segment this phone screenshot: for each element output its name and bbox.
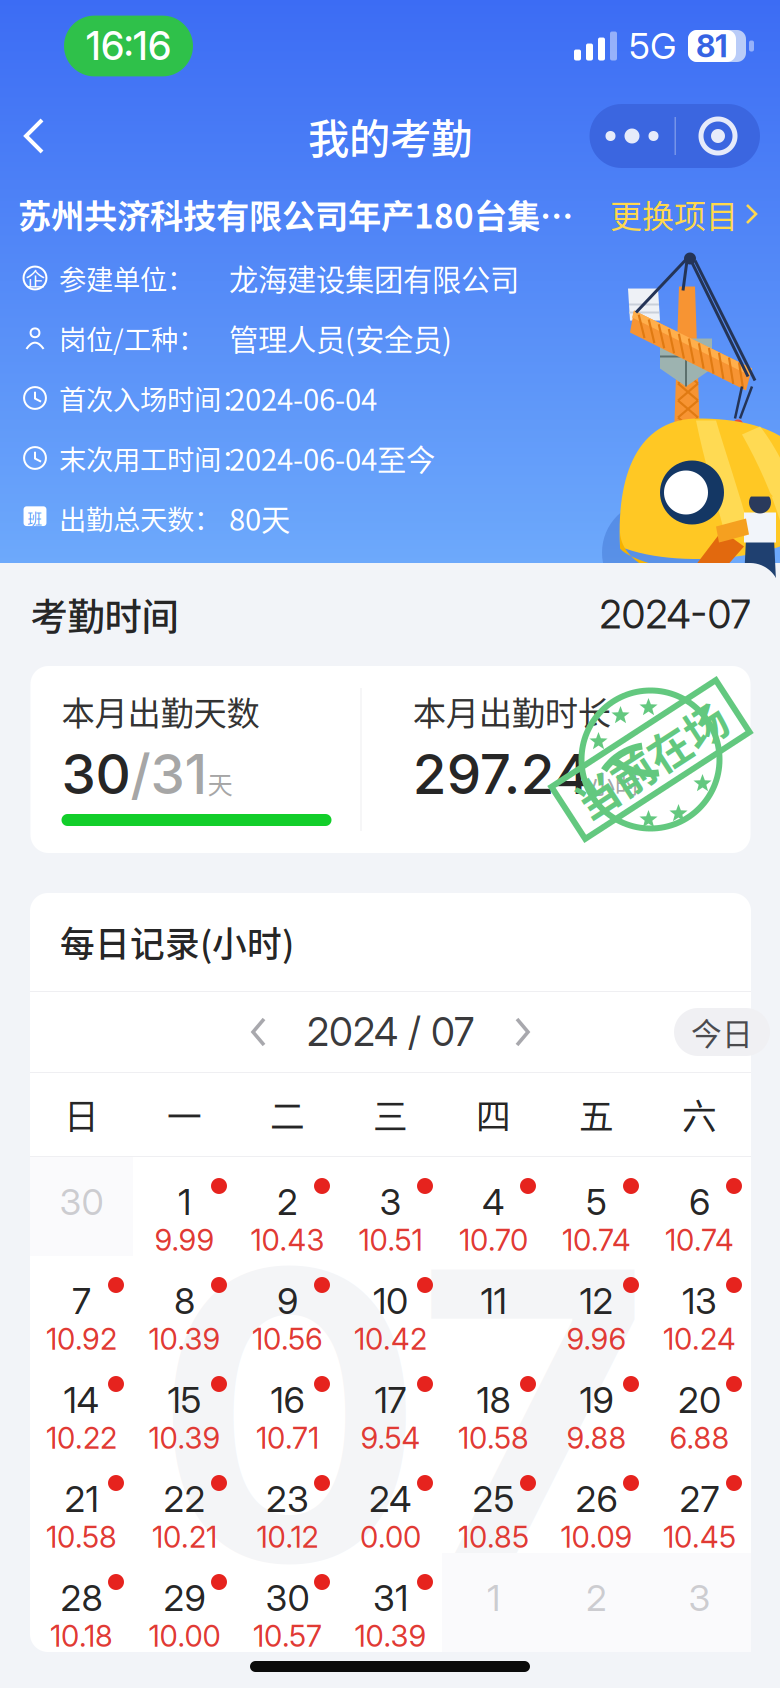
staticText: 参建单位： [59,258,194,298]
staticText: 10.57 [253,1618,322,1654]
staticText: 首次入场时间： [59,378,248,418]
staticText: 龙海建设集团有限公司 [229,257,519,299]
staticText: 10.18 [50,1618,113,1654]
staticText: 24 [369,1477,412,1521]
button[interactable]: 更换项目 [610,191,760,237]
staticText: 297.24 [413,741,590,807]
staticText: 更换项目 [610,191,738,237]
staticText: 一 [167,1089,202,1140]
staticText: 我的考勤 [308,106,472,166]
staticText: 28 [60,1576,102,1620]
staticText: 今日 [691,1010,753,1054]
staticText: 每日记录(小时) [60,917,294,967]
staticText: 日 [64,1089,99,1140]
staticText: 80天 [229,497,290,539]
staticText: 9.96 [566,1321,626,1357]
staticText: 17 [374,1378,406,1422]
button[interactable]: Next month [510,1013,534,1051]
staticText: 10.39 [354,1618,426,1654]
staticText: 2024-07 [599,591,750,638]
staticText: 30 [61,741,130,807]
button[interactable]: Back [0,108,68,164]
staticText: 天 [207,764,232,801]
staticText: 10.85 [458,1519,529,1555]
staticText: 10.21 [152,1519,217,1555]
staticText: 9.54 [360,1420,420,1456]
staticText: 18 [476,1378,510,1422]
staticText: 10.39 [148,1420,220,1456]
staticText: 27 [679,1477,719,1521]
staticText: 管理人员(安全员) [229,317,452,359]
staticText: 10.24 [663,1321,736,1357]
staticText: 1 [178,1180,191,1224]
staticText: 9.99 [154,1222,214,1258]
staticText: 22 [163,1477,205,1521]
staticText: 12 [579,1279,613,1323]
staticText: 二 [270,1089,305,1140]
staticText: 21 [64,1477,98,1521]
staticText: 2 [277,1180,298,1224]
staticText: 考勤时间 [30,587,178,642]
staticText: 07 [154,1173,649,1657]
staticText: 5 [586,1180,607,1224]
staticText: 15 [167,1378,201,1422]
staticText: 16:16 [86,23,171,69]
staticText: 10.58 [458,1420,529,1456]
staticText: 20 [678,1378,721,1422]
staticText: 企 [25,264,44,292]
staticText: 五 [579,1089,614,1140]
staticText: 81 [696,27,728,64]
staticText: 11 [480,1279,506,1323]
staticText: 6 [689,1180,710,1224]
staticText: 本月出勤天数 [61,687,259,735]
button[interactable]: 今日 [674,1008,751,1056]
staticText: 10.74 [665,1222,734,1258]
staticText: 30 [265,1576,309,1620]
staticText: 7 [72,1279,91,1323]
staticText: 10.42 [354,1321,427,1357]
staticText: 9 [277,1279,298,1323]
staticText: 10.56 [252,1321,323,1357]
staticText: 六 [682,1089,717,1140]
button[interactable]: Close [676,104,760,168]
staticText: 10 [373,1279,408,1323]
staticText: 小时 [590,764,640,801]
staticText: 四 [476,1089,511,1140]
staticText: 26 [575,1477,617,1521]
staticText: 3 [379,1180,401,1224]
staticText: 10.71 [256,1420,319,1456]
staticText: 29 [163,1576,205,1620]
staticText: 班 [27,507,42,529]
staticText: 23 [266,1477,309,1521]
staticText: 出勤总天数： [59,498,221,538]
staticText: 岗位/工种： [59,318,205,358]
staticText: 2024-06-04至今 [229,437,435,479]
staticText: 13 [682,1279,717,1323]
staticText: 30 [59,1180,103,1224]
staticText: /31 [130,741,207,807]
staticText: 末次用工时间： [59,438,248,478]
staticText: 10.00 [148,1618,220,1654]
staticText: 10.51 [358,1222,422,1258]
staticText: 10.22 [46,1420,117,1456]
staticText: 14 [63,1378,99,1422]
staticText: 10.09 [560,1519,632,1555]
staticText: 19 [579,1378,613,1422]
staticText: 10.45 [663,1519,736,1555]
staticText: 2 [586,1576,607,1620]
staticText: 16 [270,1378,304,1422]
button[interactable]: Previous month [247,1013,271,1051]
staticText: 1 [487,1576,500,1620]
staticText: 10.74 [562,1222,631,1258]
staticText: 10.70 [459,1222,528,1258]
staticText: 31 [373,1576,408,1620]
staticText: 2024 / 07 [307,1009,474,1055]
staticText: 6.88 [669,1420,729,1456]
staticText: 2024-06-04 [229,377,377,419]
staticText: 10.92 [46,1321,117,1357]
staticText: 10.43 [250,1222,324,1258]
staticText: 10.58 [46,1519,117,1555]
button[interactable]: More [589,104,674,168]
staticText: 10.12 [256,1519,318,1555]
staticText: 三 [373,1089,408,1140]
